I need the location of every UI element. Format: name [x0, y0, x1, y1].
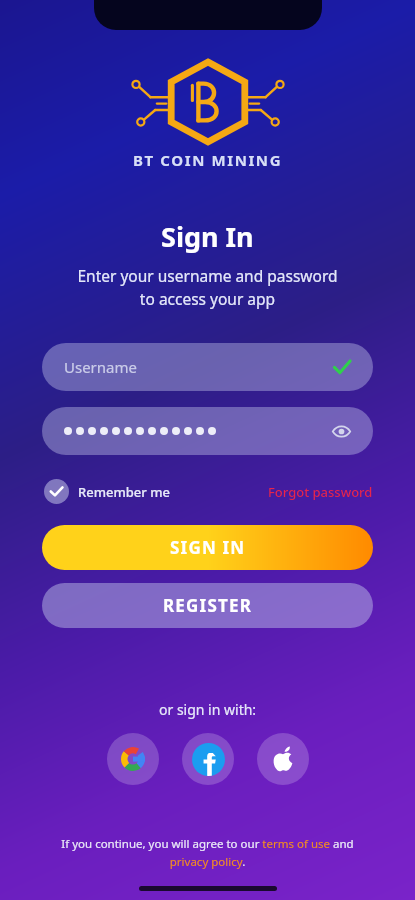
- button[interactable]: Sign in with Google: [107, 733, 159, 785]
- button[interactable]: Sign in with Facebook: [182, 733, 234, 785]
- button[interactable]: Sign in with Apple: [257, 733, 309, 785]
- staticText: REGISTER: [163, 594, 253, 617]
- staticText: If you continue, you will agree to our t…: [61, 836, 354, 869]
- staticText: Sign In: [161, 218, 254, 255]
- other: Valid: [333, 358, 351, 376]
- button[interactable]: If you continue, you will agree to our t…: [57, 836, 358, 869]
- button[interactable]: Remember me: [42, 475, 172, 508]
- staticText: Forgot password: [268, 483, 373, 501]
- staticText: Username: [64, 357, 137, 377]
- button[interactable]: Username: [42, 343, 373, 391]
- button[interactable]: Forgot password: [268, 479, 373, 505]
- staticText: Remember me: [78, 483, 170, 501]
- button[interactable]: Show password: [42, 407, 373, 455]
- staticText: Enter your username and password to acce…: [77, 265, 338, 310]
- button[interactable]: REGISTER: [42, 583, 373, 628]
- staticText: SIGN IN: [170, 536, 246, 559]
- button[interactable]: SIGN IN: [42, 525, 373, 570]
- staticText: BT COIN MINING: [133, 150, 283, 170]
- staticText: or sign in with:: [159, 700, 257, 719]
- other: Show password: [332, 422, 351, 441]
